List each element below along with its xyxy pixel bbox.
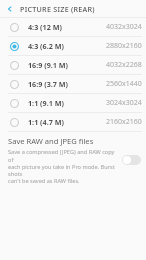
staticText: 1:1 (9.1 M)	[28, 98, 64, 108]
staticText: Save a compressed (JPEG) and RAW copy of…	[8, 148, 119, 184]
staticText: 1:1 (4.7 M)	[28, 117, 64, 127]
button[interactable]: 16:9 (3.7 M)	[0, 75, 146, 93]
staticText: PICTURE SIZE (REAR)	[20, 4, 95, 14]
button[interactable]: 4:3 (12 M)	[0, 18, 146, 36]
staticText: 4:3 (12 M)	[28, 22, 62, 32]
staticText: 16:9 (3.7 M)	[28, 79, 68, 89]
staticText: 2560x1440	[106, 79, 142, 89]
button[interactable]: 4:3 (6.2 M)	[0, 37, 146, 55]
button[interactable]: Save RAW and JPEG files toggle	[122, 155, 141, 165]
button[interactable]: 1:1 (4.7 M)	[0, 113, 146, 131]
staticText: Save RAW and JPEG files	[8, 136, 94, 146]
staticText: 4:3 (6.2 M)	[28, 41, 64, 51]
staticText: 4032x2268	[106, 60, 142, 70]
staticText: 2160x2160	[106, 117, 142, 127]
staticText: 16:9 (9.1 M)	[28, 60, 68, 70]
button[interactable]: 1:1 (9.1 M)	[0, 94, 146, 112]
staticText: 3024x3024	[106, 98, 142, 108]
button[interactable]: Save RAW and JPEG files	[8, 136, 141, 184]
staticText: 4032x3024	[106, 22, 142, 32]
button[interactable]: Back	[0, 0, 20, 17]
button[interactable]: 16:9 (9.1 M)	[0, 56, 146, 74]
staticText: 2880x2160	[106, 41, 142, 51]
